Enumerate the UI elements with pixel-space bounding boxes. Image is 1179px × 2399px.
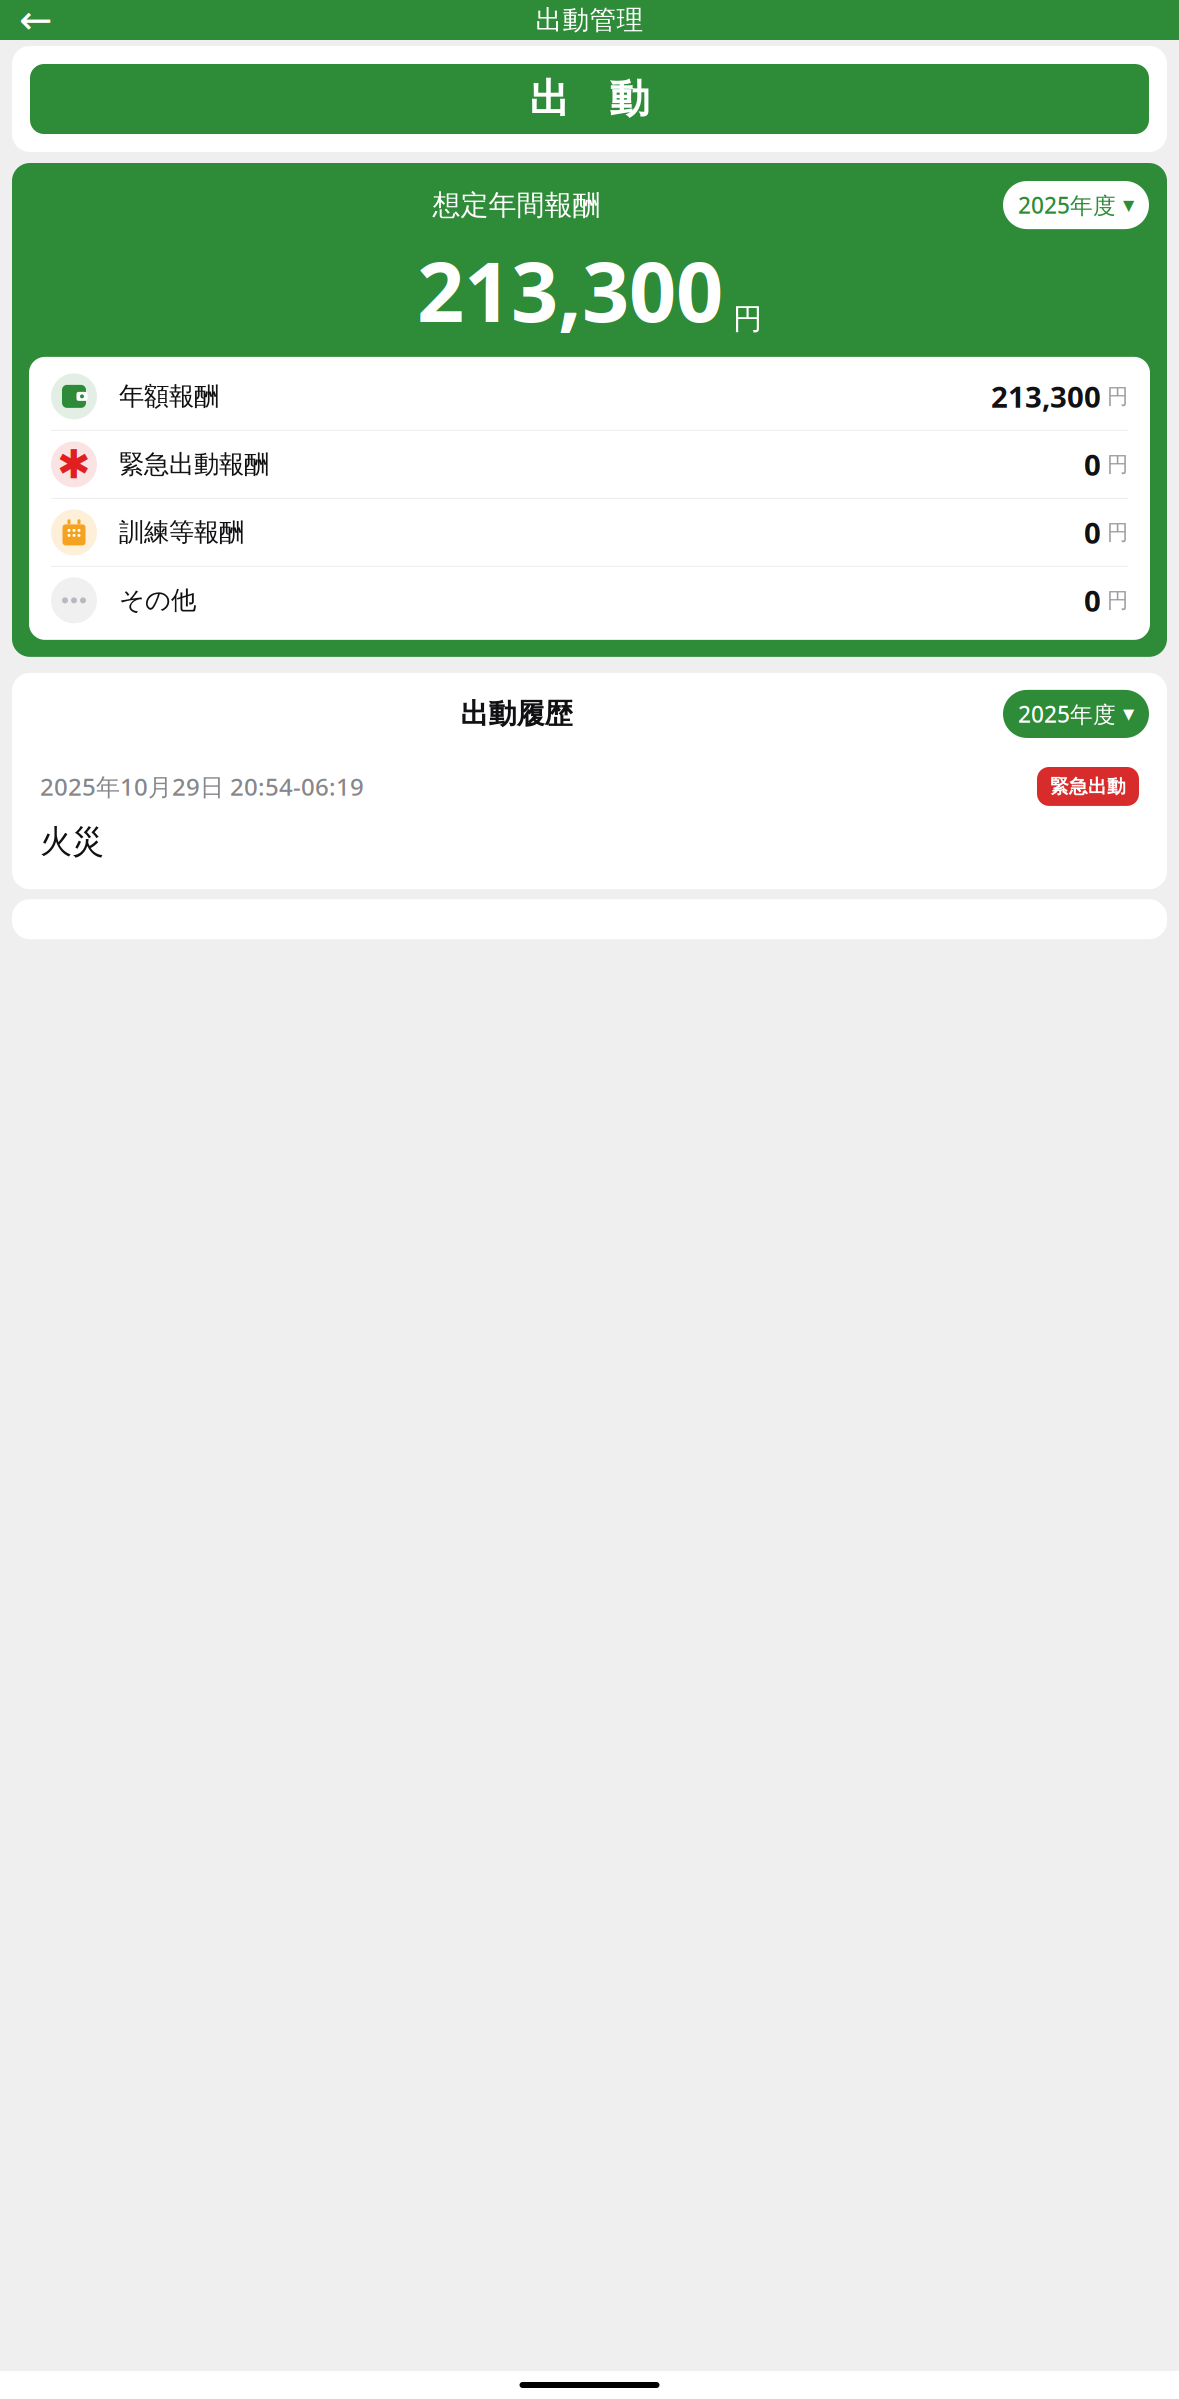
- staticText: 年額報酬: [119, 381, 219, 412]
- staticText: 2025年10月29日 20:54-06:19: [40, 770, 364, 802]
- staticText: その他: [119, 585, 196, 616]
- staticText: 0: [1084, 513, 1101, 552]
- staticText: 想定年間報酬: [432, 188, 600, 222]
- staticText: 訓練等報酬: [119, 517, 244, 548]
- staticText: 213,300: [991, 377, 1101, 416]
- staticText: ▼: [1123, 197, 1134, 213]
- staticText: 円: [733, 301, 762, 337]
- button[interactable]: 出 動: [30, 64, 1149, 134]
- staticText: 2025年度: [1018, 699, 1116, 729]
- staticText: 緊急出動報酬: [119, 449, 269, 480]
- staticText: 0: [1084, 581, 1101, 620]
- staticText: ✱: [57, 442, 91, 487]
- staticText: 0: [1084, 445, 1101, 484]
- staticText: 火災: [40, 822, 104, 861]
- staticText: 2025年度: [1018, 190, 1116, 220]
- button[interactable]: 2025年度: [1003, 181, 1149, 229]
- staticText: 円: [1107, 519, 1128, 545]
- button[interactable]: 2025年10月29日 20:54-06:19: [23, 750, 1156, 878]
- staticText: 円: [1107, 383, 1128, 409]
- staticText: 出 動: [529, 74, 649, 123]
- staticText: ←: [19, 0, 53, 43]
- staticText: 緊急出動: [1050, 775, 1126, 798]
- staticText: 213,300: [417, 235, 723, 345]
- staticText: 出動管理: [535, 4, 643, 36]
- button[interactable]: Back: [14, 0, 58, 42]
- staticText: 円: [1107, 587, 1128, 613]
- staticText: 円: [1107, 451, 1128, 477]
- staticText: 出動履歴: [460, 697, 572, 731]
- staticText: ▼: [1123, 706, 1134, 722]
- button[interactable]: 2025年度: [1003, 690, 1149, 738]
